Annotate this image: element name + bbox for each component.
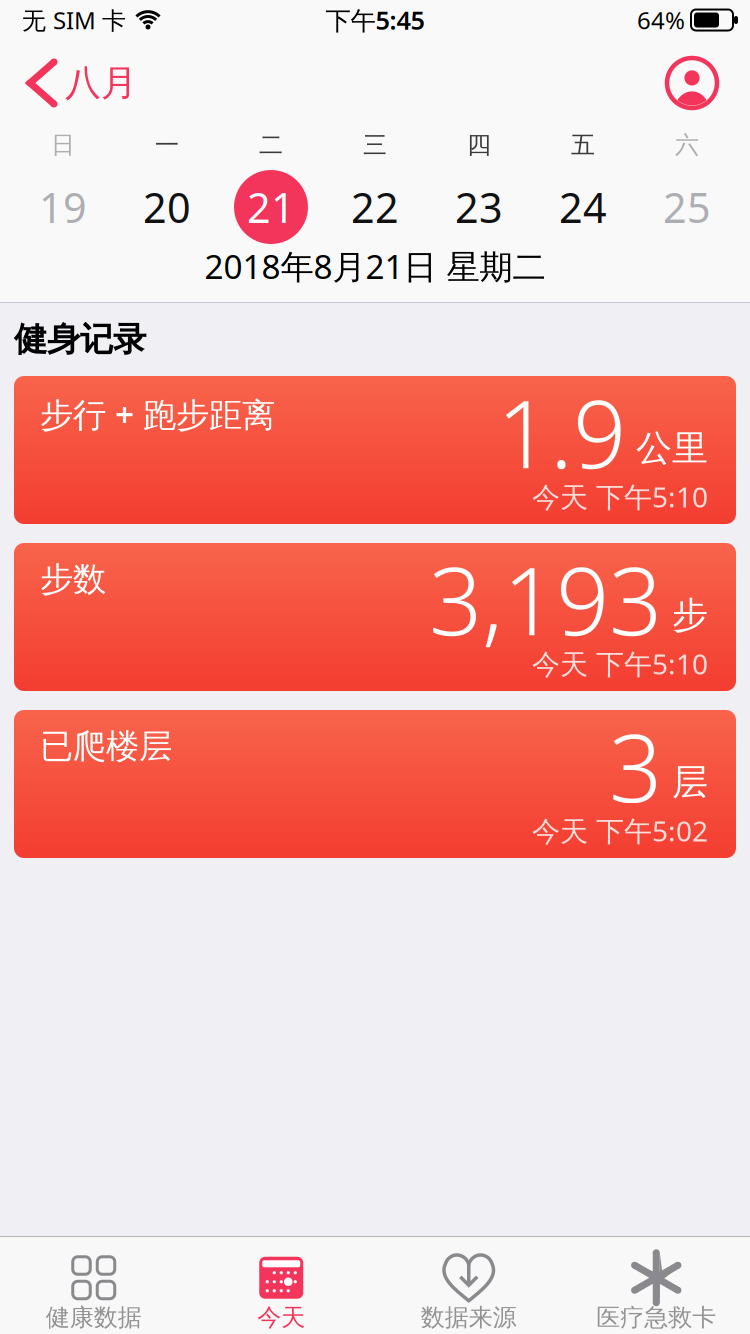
- staticText: 20: [143, 180, 191, 234]
- staticText: 六: [675, 130, 699, 160]
- staticText: 一: [155, 130, 179, 160]
- staticText: 数据来源: [421, 1303, 517, 1332]
- staticText: 三: [363, 130, 387, 160]
- staticText: 医疗急救卡: [596, 1303, 716, 1332]
- staticText: 已爬楼层: [40, 726, 172, 767]
- staticText: 24: [559, 180, 607, 234]
- staticText: 八月: [65, 61, 137, 105]
- staticText: 日: [51, 130, 75, 160]
- staticText: 四: [467, 130, 491, 160]
- staticText: 3,193: [429, 537, 662, 661]
- staticText: 五: [571, 130, 595, 160]
- staticText: 层: [672, 760, 708, 804]
- staticText: 今天 下午5:10: [532, 645, 708, 682]
- staticText: 步: [672, 593, 708, 637]
- staticText: 步数: [40, 559, 106, 600]
- staticText: 二: [259, 130, 283, 160]
- staticText: 健康数据: [46, 1303, 142, 1332]
- staticText: 无 SIM 卡: [22, 4, 126, 36]
- staticText: 21: [247, 180, 295, 234]
- staticText: 今天: [257, 1303, 305, 1332]
- staticText: 19: [39, 180, 87, 234]
- staticText: 64%: [637, 4, 685, 36]
- staticText: 25: [663, 180, 711, 234]
- staticText: 3: [609, 704, 662, 828]
- staticText: 1.9: [497, 370, 626, 494]
- staticText: 23: [455, 180, 503, 234]
- staticText: 今天 下午5:10: [532, 478, 708, 515]
- staticText: 健身记录: [14, 319, 146, 360]
- staticText: 步行 + 跑步距离: [40, 392, 275, 436]
- staticText: 下午5:45: [325, 3, 424, 37]
- staticText: 2018年8月21日 星期二: [204, 244, 545, 288]
- staticText: 22: [351, 180, 399, 234]
- staticText: 今天 下午5:02: [532, 812, 708, 849]
- staticText: 公里: [636, 426, 708, 470]
